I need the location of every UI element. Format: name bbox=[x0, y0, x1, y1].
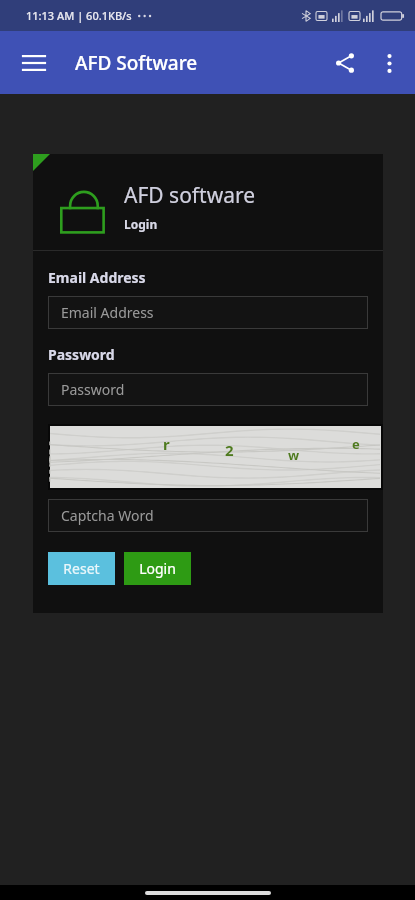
staticText: Login bbox=[139, 559, 176, 578]
staticText: e bbox=[352, 435, 360, 453]
button[interactable]: Open navigation menu bbox=[12, 41, 56, 85]
staticText: AFD software bbox=[124, 181, 256, 210]
button[interactable]: Password bbox=[48, 373, 368, 406]
button[interactable]: Login bbox=[124, 552, 191, 585]
button[interactable]: Captcha Word bbox=[48, 499, 368, 532]
button[interactable]: Email Address bbox=[48, 296, 368, 329]
button[interactable]: Reset bbox=[48, 552, 115, 585]
staticText: 2 bbox=[225, 440, 234, 460]
staticText: Email Address bbox=[48, 268, 146, 287]
staticText: 11:13 AM | 60.1KB/s bbox=[26, 8, 132, 23]
staticText: Reset bbox=[63, 559, 100, 578]
staticText: Login bbox=[124, 216, 158, 232]
staticText: Password bbox=[48, 345, 115, 364]
button[interactable]: Share bbox=[323, 41, 367, 85]
staticText: Email Address bbox=[61, 303, 154, 322]
staticText: w bbox=[288, 446, 300, 464]
staticText: AFD Software bbox=[75, 50, 198, 76]
staticText: Captcha Word bbox=[61, 506, 154, 525]
staticText: r bbox=[163, 434, 170, 454]
staticText: Password bbox=[61, 380, 125, 399]
button[interactable]: More options bbox=[369, 43, 409, 83]
